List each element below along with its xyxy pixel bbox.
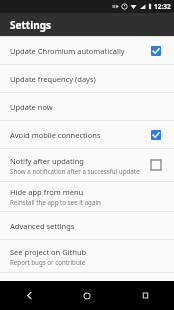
staticText: Hide app from menu bbox=[10, 187, 84, 197]
other: Update Chromium automatically bbox=[146, 41, 166, 61]
staticText: Avoid mobile connections bbox=[10, 130, 101, 140]
staticText: Settings bbox=[10, 18, 51, 32]
staticText: Update Chromium automatically bbox=[10, 46, 125, 56]
staticText: 12:32 bbox=[154, 2, 171, 11]
staticText: Reinstall the app to see it again bbox=[10, 198, 101, 206]
button[interactable]: Update Chromium automatically bbox=[0, 37, 174, 64]
button[interactable]: Back bbox=[0, 281, 58, 310]
button[interactable]: Notify after updating bbox=[0, 149, 174, 181]
staticText: Notify after updating bbox=[10, 156, 84, 166]
button[interactable]: Update frequency (days) bbox=[0, 65, 174, 92]
staticText: Update frequency (days) bbox=[10, 74, 96, 84]
button[interactable]: Advanced settings bbox=[0, 212, 174, 239]
button[interactable]: Recent apps bbox=[116, 281, 174, 310]
other: Notify after updating bbox=[146, 155, 166, 175]
staticText: Report bugs or contribute bbox=[10, 258, 86, 266]
staticText: See project on Github bbox=[10, 247, 87, 257]
button[interactable]: Home bbox=[58, 281, 116, 310]
staticText: Update now bbox=[10, 102, 53, 112]
button[interactable]: Hide app from menu bbox=[0, 182, 174, 211]
button[interactable]: Update now bbox=[0, 93, 174, 120]
other: Avoid mobile connections bbox=[146, 125, 166, 145]
button[interactable]: See project on Github bbox=[0, 240, 174, 272]
staticText: Advanced settings bbox=[10, 221, 75, 231]
staticText: Show a notification after a successful u… bbox=[10, 167, 140, 175]
button[interactable]: Avoid mobile connections bbox=[0, 121, 174, 148]
